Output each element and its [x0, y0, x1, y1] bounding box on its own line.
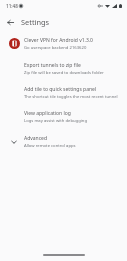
button[interactable]: Clever VPN for Android v1.3.0	[0, 33, 127, 55]
staticText: Allow remote control apps	[24, 143, 76, 149]
staticText: Advanced	[24, 135, 48, 142]
staticText: Go userspace backend 2163620	[24, 45, 87, 51]
staticText: Zip file will be saved to downloads fold…	[24, 70, 104, 76]
staticText: Export tunnels to zip file	[24, 62, 81, 69]
staticText: The shortcut tile toggles the most recen…	[24, 94, 118, 100]
staticText: 11:48	[6, 3, 18, 9]
staticText: Add tile to quick settings panel	[24, 86, 97, 93]
button[interactable]: Add tile to quick settings panel	[0, 82, 127, 104]
button[interactable]: Back	[3, 15, 17, 29]
staticText: View application log	[24, 110, 71, 117]
other: Expand advanced	[8, 136, 19, 147]
button[interactable]: Export tunnels to zip file	[0, 58, 127, 80]
staticText: Logs may assist with debugging	[24, 118, 87, 124]
button[interactable]: View application log	[0, 106, 127, 128]
staticText: Settings	[21, 17, 50, 27]
button[interactable]: Expand advanced	[0, 131, 127, 153]
staticText: Clever VPN for Android v1.3.0	[24, 37, 93, 44]
